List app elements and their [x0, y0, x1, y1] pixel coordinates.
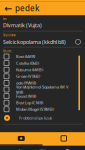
- button[interactable]: Recent apps: [60, 146, 74, 150]
- staticText: ◀: [16, 148, 20, 150]
- staticText: ←: [4, 3, 12, 13]
- button[interactable]: Cetvlka (0kB): [0, 60, 85, 66]
- staticText: Kutsuma (kMB): [16, 67, 43, 72]
- staticText: Eclucte: [3, 49, 12, 53]
- button[interactable]: Fosost (M8): [0, 93, 85, 99]
- staticText: Mobin (Xloge) (S'8MB): [16, 107, 54, 112]
- button[interactable]: Bost (kMR): [0, 53, 85, 60]
- staticText: Selcickopolama (kkdhl b8): [3, 38, 66, 45]
- button[interactable]: Gallery: [42, 132, 85, 144]
- button[interactable]: Select option: [3, 114, 11, 122]
- staticText: Fosost (M8): [16, 93, 36, 99]
- button[interactable]: Back: [2, 2, 15, 15]
- button[interactable]: ooto (YVM8): [0, 80, 85, 86]
- staticText: Bost (kMR): [16, 54, 35, 59]
- staticText: Frobtiemd ipx kzuk: [19, 115, 52, 120]
- button[interactable]: Bost Lop (CM8): [0, 99, 85, 106]
- button[interactable]: Von (Atjnlemo) Sopolama (M V M8): [0, 86, 85, 93]
- staticText: Groan (V 0kB): [16, 74, 40, 79]
- button[interactable]: Home: [35, 146, 49, 150]
- staticText: Cetvlka (0kB): [16, 60, 39, 66]
- staticText: Bost Lop (CM8): [16, 100, 43, 105]
- button[interactable]: Groan (V 0kB): [0, 73, 85, 80]
- staticText: Dlvmatik (Vujta): [3, 22, 42, 29]
- button[interactable]: Camera: [0, 132, 42, 144]
- staticText: ooto (YVM8): [16, 80, 36, 85]
- button[interactable]: Back: [11, 146, 25, 150]
- staticText: Von (Atjnlemo) Sopolama (M V M8): [16, 84, 68, 95]
- button[interactable]: Refresh: [74, 38, 82, 46]
- button[interactable]: Mobin (Xloge) (S'8MB): [0, 106, 85, 113]
- button[interactable]: Kutsuma (kMB): [0, 66, 85, 73]
- staticText: pedek: [15, 3, 39, 13]
- staticText: km: [3, 17, 6, 21]
- staticText: Sopolama: [3, 33, 15, 37]
